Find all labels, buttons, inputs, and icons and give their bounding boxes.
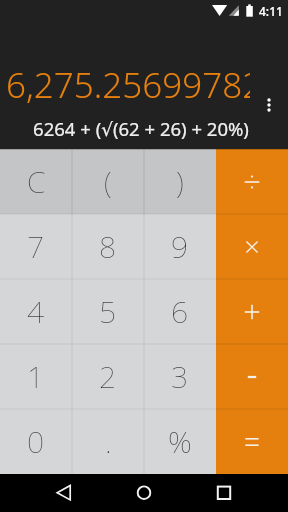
staticText: 7	[27, 226, 45, 267]
button[interactable]: More options	[255, 91, 283, 119]
button[interactable]: eq	[216, 409, 288, 474]
button[interactable]: 9	[144, 214, 216, 279]
button[interactable]: 3	[144, 344, 216, 409]
staticText: 0	[27, 421, 45, 462]
staticText: 9	[171, 226, 189, 267]
button[interactable]: Back	[24, 474, 104, 512]
staticText: )	[176, 161, 184, 202]
button[interactable]: 0	[0, 409, 72, 474]
staticText: (	[104, 161, 112, 202]
staticText: 4	[27, 291, 45, 332]
button[interactable]: 5	[72, 279, 144, 344]
button[interactable]: .	[72, 409, 144, 474]
button[interactable]: 1	[0, 344, 72, 409]
button[interactable]: add	[216, 279, 288, 344]
button[interactable]: )	[144, 149, 216, 214]
staticText: 6	[171, 291, 189, 332]
button[interactable]: Recent apps	[184, 474, 264, 512]
staticText: 5	[99, 291, 117, 332]
button[interactable]: Home	[104, 474, 184, 512]
staticText: 8	[99, 226, 117, 267]
button[interactable]: 2	[72, 344, 144, 409]
button[interactable]: C	[0, 149, 72, 214]
staticText: 6,275.25699782456	[6, 61, 250, 107]
button[interactable]: 7	[0, 214, 72, 279]
button[interactable]: mul	[216, 214, 288, 279]
staticText: 6264 + (√(62 + 26) + 20%)	[33, 116, 249, 141]
button[interactable]: (	[72, 149, 144, 214]
staticText: 3	[171, 356, 189, 397]
button[interactable]: 6	[144, 279, 216, 344]
button[interactable]: 8	[72, 214, 144, 279]
staticText: 2	[99, 356, 117, 397]
staticText: 1	[27, 356, 45, 397]
staticText: %	[168, 421, 192, 462]
button[interactable]: div	[216, 149, 288, 214]
staticText: 4:11	[259, 3, 283, 19]
staticText: C	[27, 161, 46, 202]
staticText: .	[105, 421, 112, 462]
button[interactable]: sub	[216, 344, 288, 409]
button[interactable]: 4	[0, 279, 72, 344]
button[interactable]: %	[144, 409, 216, 474]
